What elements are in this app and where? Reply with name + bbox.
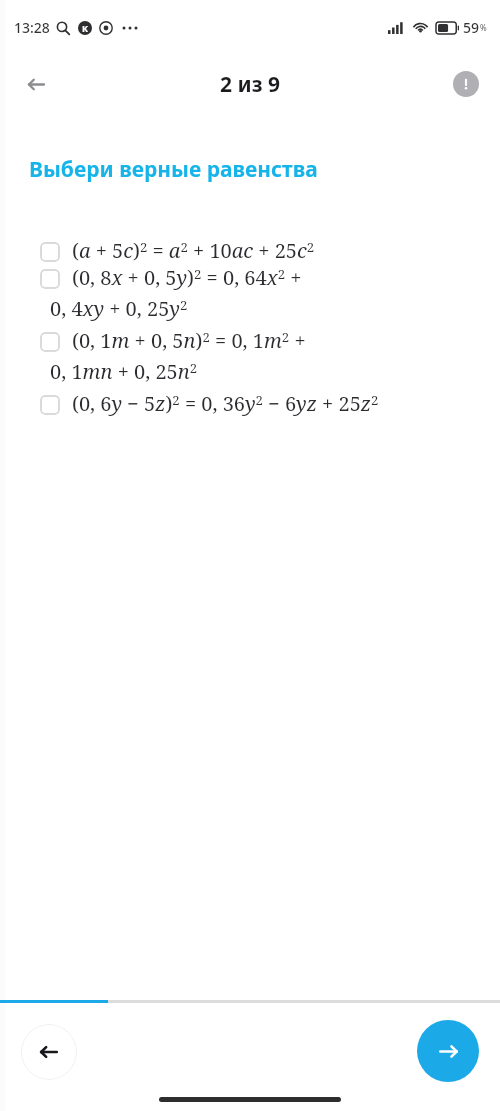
button[interactable]: Next <box>417 1020 479 1082</box>
staticText: 2 из 9 <box>220 70 280 99</box>
staticText: (0, 1m + 0, 5n)2 = 0, 1m2 + <box>72 327 306 354</box>
staticText: K <box>82 22 88 34</box>
button[interactable]: Information <box>446 64 486 104</box>
button[interactable]: (0, 1m + 0, 5n)2 = 0, 1m2 + <box>40 327 490 354</box>
staticText: (0, 6y − 5z)2 = 0, 36y2 − 6yz + 25z2 <box>72 390 379 417</box>
staticText: (a + 5c)2 = a2 + 10ac + 25c2 <box>72 237 315 264</box>
staticText: Выбери верные равенства <box>29 155 318 184</box>
button[interactable]: (a + 5c)2 = a2 + 10ac + 25c2 <box>40 237 490 264</box>
button[interactable]: (0, 8x + 0, 5y)2 = 0, 64x2 + <box>40 264 490 291</box>
button[interactable]: Back <box>14 62 58 106</box>
staticText: 0, 1mn + 0, 25n2 <box>50 358 198 385</box>
button[interactable]: (0, 6y − 5z)2 = 0, 36y2 − 6yz + 25z2 <box>40 390 490 417</box>
staticText: 59 <box>463 18 480 37</box>
staticText: 0, 4xy + 0, 25y2 <box>50 295 188 322</box>
staticText: 13:28 <box>14 18 50 37</box>
staticText: (0, 8x + 0, 5y)2 = 0, 64x2 + <box>72 264 302 291</box>
staticText: % <box>480 22 487 33</box>
button[interactable]: Previous <box>21 1024 77 1080</box>
